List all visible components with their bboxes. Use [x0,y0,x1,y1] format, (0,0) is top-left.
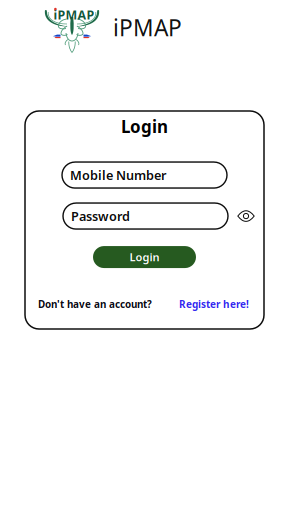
button[interactable]: Show password [228,203,259,229]
button[interactable]: Login [93,246,196,268]
staticText: Login [129,249,159,265]
staticText: Register here! [179,297,249,311]
staticText: iPMAP [53,6,94,23]
staticText: iPMAP [113,12,182,43]
button[interactable]: Register here! [179,297,249,311]
staticText: Mobile Number [70,166,166,184]
staticText: Password [71,207,130,225]
staticText: Don't have an account? [38,297,152,311]
staticText: Login [121,115,168,138]
